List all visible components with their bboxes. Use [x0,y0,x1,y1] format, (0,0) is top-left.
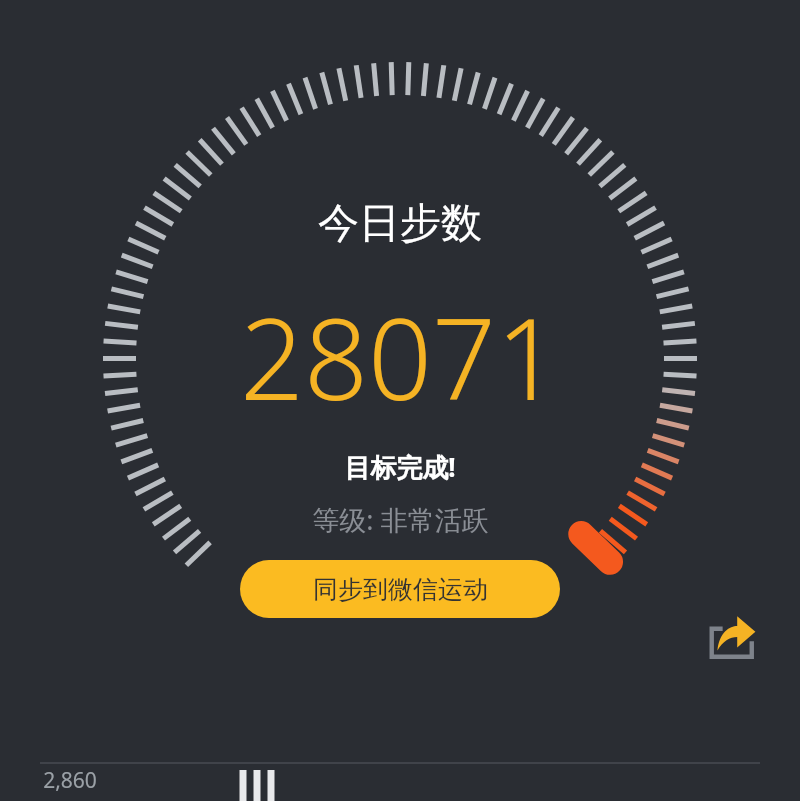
staticText: 2,860 [43,766,97,795]
staticText: 等级: 非常活跃 [312,501,489,538]
staticText: 同步到微信运动 [313,574,488,605]
staticText: 今日步数 [318,198,482,250]
button[interactable]: 同步到微信运动 [240,560,560,618]
button[interactable]: Share [706,611,758,663]
staticText: 目标完成! [344,449,456,485]
staticText: 28071 [240,280,560,433]
